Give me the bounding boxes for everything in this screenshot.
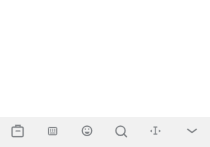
- button[interactable]: Collapse keyboard: [175, 117, 210, 147]
- button[interactable]: Stickers: [35, 117, 70, 147]
- button[interactable]: Text editing: [140, 117, 175, 147]
- button[interactable]: Clipboard: [0, 117, 35, 147]
- button[interactable]: Search: [105, 117, 140, 147]
- button[interactable]: Emoji: [70, 117, 105, 147]
